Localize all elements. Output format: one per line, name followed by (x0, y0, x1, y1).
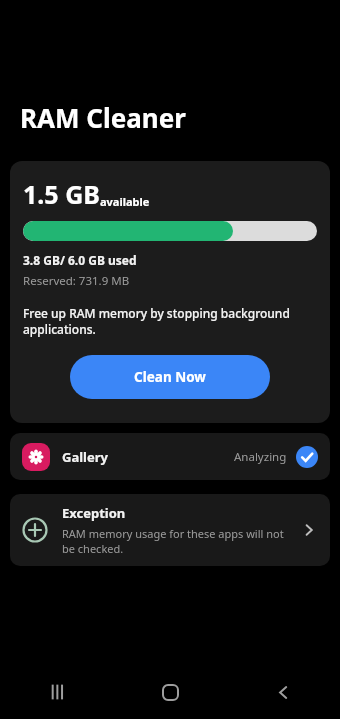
button[interactable]: Clean Now (70, 355, 270, 399)
button[interactable]: Open exception list (298, 519, 320, 541)
button[interactable]: Recent apps (0, 665, 114, 719)
staticText: Gallery (62, 448, 108, 466)
staticText: Reserved: 731.9 MB (23, 273, 130, 289)
staticText: available (100, 194, 150, 209)
staticText: Exception (62, 504, 126, 522)
button[interactable]: Back (227, 665, 340, 719)
staticText: Clean Now (134, 368, 206, 386)
staticText: Free up RAM memory by stopping backgroun… (23, 305, 318, 338)
staticText: RAM Cleaner (20, 100, 186, 135)
button[interactable]: Home (114, 665, 227, 719)
staticText: Analyzing (234, 449, 287, 465)
staticText: 1.5 GB (23, 177, 100, 211)
button[interactable]: Exception (10, 494, 330, 566)
button[interactable]: Selected (296, 446, 318, 468)
staticText: RAM memory usage for these apps will not… (62, 526, 292, 556)
button[interactable]: Gallery (10, 433, 330, 480)
staticText: 3.8 GB/ 6.0 GB used (23, 252, 137, 268)
